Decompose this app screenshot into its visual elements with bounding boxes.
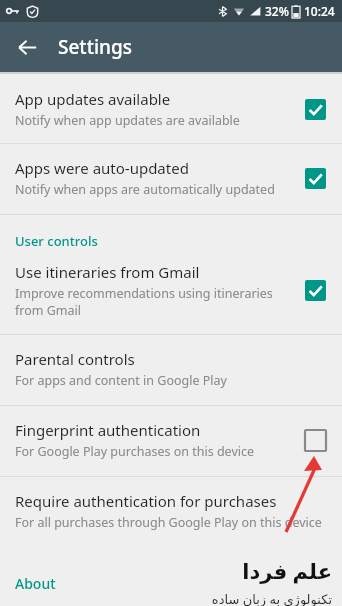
button[interactable]: Checked: [300, 94, 330, 124]
button[interactable]: Back: [10, 30, 44, 64]
staticText: User controls: [15, 232, 98, 250]
staticText: Apps were auto-updated: [15, 158, 189, 178]
staticText: 10:24: [304, 3, 335, 19]
staticText: App updates available: [15, 89, 171, 109]
staticText: تکنولوژی به زبان ساده: [211, 590, 332, 606]
staticText: Parental controls: [15, 349, 135, 369]
staticText: Settings: [58, 34, 132, 60]
staticText: Require authentication for purchases: [15, 491, 277, 511]
button[interactable]: Parental controls: [0, 335, 342, 405]
button[interactable]: App updates available: [0, 77, 342, 143]
staticText: For apps and content in Google Play: [15, 372, 227, 389]
button[interactable]: Unchecked: [300, 425, 330, 455]
staticText: علم فردا: [242, 557, 332, 586]
button[interactable]: Apps were auto-updated: [0, 144, 342, 214]
button[interactable]: Checked: [300, 163, 330, 193]
button[interactable]: Use itineraries from Gmail: [0, 260, 342, 334]
staticText: 32%: [265, 3, 289, 19]
button[interactable]: Fingerprint authentication: [0, 406, 342, 476]
staticText: Use itineraries from Gmail: [15, 262, 200, 282]
staticText: Notify when apps are automatically updat…: [15, 181, 275, 198]
button[interactable]: About: [15, 574, 56, 593]
staticText: Improve recommendations using itinerarie…: [15, 285, 292, 318]
button[interactable]: Checked: [300, 275, 330, 305]
staticText: Fingerprint authentication: [15, 420, 201, 440]
button[interactable]: Require authentication for purchases: [0, 477, 342, 541]
staticText: Notify when app updates are available: [15, 112, 240, 129]
staticText: For Google Play purchases on this device: [15, 443, 255, 460]
staticText: For all purchases through Google Play on…: [15, 514, 322, 531]
